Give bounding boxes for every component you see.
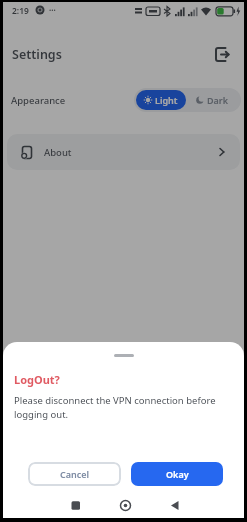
button[interactable]	[164, 500, 244, 518]
staticText: Appearance	[11, 94, 66, 107]
staticText: Dark	[207, 94, 229, 106]
staticText: Settings	[12, 46, 62, 63]
button[interactable]: Cancel	[28, 462, 121, 486]
staticText: About	[44, 146, 72, 159]
button[interactable]: Dark	[186, 90, 239, 110]
staticText: ...	[49, 2, 56, 13]
staticText: 2:19	[12, 5, 29, 17]
button[interactable]	[3, 500, 84, 518]
staticText: Light	[155, 94, 178, 106]
staticText: LogOut?	[14, 372, 60, 387]
staticText: Please disconnect the VPN connection bef…	[14, 394, 216, 420]
button[interactable]	[84, 500, 164, 518]
button[interactable]: About	[7, 134, 240, 170]
button[interactable]: Light	[136, 90, 186, 110]
staticText: Okay	[166, 468, 189, 480]
staticText: Cancel	[60, 468, 90, 480]
button[interactable]	[215, 47, 230, 62]
button[interactable]: Okay	[131, 462, 223, 486]
